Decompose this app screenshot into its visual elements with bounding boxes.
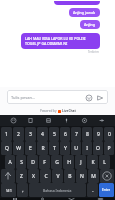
button[interactable]: 6 [60, 127, 70, 141]
button[interactable]: Home [38, 198, 47, 200]
button[interactable]: C [40, 169, 51, 183]
button[interactable]: 9 [93, 127, 103, 141]
button[interactable]: Y [60, 141, 70, 155]
staticText: T [53, 145, 56, 152]
staticText: Bahasa Indonesia [43, 188, 72, 193]
staticText: 6 [64, 131, 67, 138]
staticText: , [22, 187, 24, 194]
button[interactable]: LAH MAU BISA LAPOR LU KE POLISI TOGEL JP… [21, 33, 100, 49]
button[interactable]: !#1 [1, 183, 16, 197]
button[interactable]: M [88, 169, 99, 183]
button[interactable]: Theme [44, 116, 53, 125]
staticText: Q [5, 145, 9, 152]
staticText: N [80, 173, 84, 180]
button[interactable]: Q [1, 141, 12, 155]
button[interactable]: . [87, 183, 98, 197]
button[interactable]: Tulis pesan... [7, 90, 108, 104]
button[interactable]: 0 [104, 127, 114, 141]
button[interactable]: Recents [10, 198, 19, 200]
staticText: . [92, 187, 94, 194]
button[interactable]: K [87, 155, 98, 169]
staticText: V [56, 173, 60, 180]
button[interactable] [54, 1, 100, 5]
button[interactable]: V [52, 169, 63, 183]
button[interactable]: R [37, 141, 48, 155]
staticText: L [103, 159, 106, 166]
button[interactable]: 1 [1, 127, 12, 141]
button[interactable]: Settings [80, 116, 89, 125]
staticText: D [31, 159, 35, 166]
button[interactable]: , [17, 183, 28, 197]
button[interactable]: I [82, 141, 92, 155]
staticText: H [67, 159, 71, 166]
button[interactable]: U [71, 141, 81, 155]
staticText: C [44, 173, 48, 180]
button[interactable]: 8 [82, 127, 92, 141]
staticText: J [80, 159, 82, 166]
button[interactable]: More [97, 116, 106, 125]
staticText: !#1 [6, 188, 12, 193]
button[interactable]: Bahasa Indonesia [29, 183, 86, 197]
button[interactable]: J [75, 155, 86, 169]
button[interactable]: H [63, 155, 74, 169]
button[interactable]: Shift [1, 169, 15, 183]
staticText: S [20, 159, 23, 166]
button[interactable]: Anjing jawab [69, 8, 100, 17]
button[interactable]: Enter [99, 183, 114, 197]
button[interactable]: Back [67, 198, 76, 200]
button[interactable]: Sticker [9, 116, 18, 125]
staticText: X [32, 173, 35, 180]
staticText: K [91, 159, 95, 166]
staticText: 2 [17, 131, 20, 138]
button[interactable]: Switch keyboard [96, 198, 105, 200]
staticText: 9 [97, 131, 100, 138]
button[interactable]: S [16, 155, 26, 169]
staticText: I [86, 145, 88, 152]
button[interactable]: Send [95, 93, 104, 102]
staticText: 7 [75, 131, 78, 138]
button[interactable]: 4 [37, 127, 48, 141]
staticText: F [43, 159, 46, 166]
staticText: R [41, 145, 45, 152]
button[interactable]: D [27, 155, 38, 169]
staticText: E [29, 145, 32, 152]
staticText: Tulis pesan... [11, 95, 36, 100]
button[interactable]: 3 [25, 127, 36, 141]
staticText: 3 [29, 131, 32, 138]
button[interactable]: T [49, 141, 59, 155]
button[interactable]: F [39, 155, 50, 169]
button[interactable]: Clipboard [26, 116, 35, 125]
button[interactable]: N [76, 169, 87, 183]
staticText: M [91, 173, 96, 180]
staticText: LiveChat [62, 109, 76, 113]
button[interactable]: O [93, 141, 103, 155]
button[interactable]: 5 [49, 127, 59, 141]
button[interactable]: P [104, 141, 114, 155]
button[interactable]: Emoji [84, 93, 93, 102]
staticText: 1 [5, 131, 8, 138]
button[interactable]: A [5, 155, 15, 169]
button[interactable]: G [51, 155, 62, 169]
button[interactable]: W [13, 141, 24, 155]
button[interactable]: Anjing [80, 20, 100, 29]
button[interactable]: Voice input [62, 116, 71, 125]
staticText: O [96, 145, 100, 152]
button[interactable]: 7 [71, 127, 81, 141]
staticText: A [8, 159, 12, 166]
button[interactable]: B [64, 169, 75, 183]
button[interactable]: L [99, 155, 110, 169]
staticText: W [16, 145, 21, 152]
staticText: Enter [102, 188, 111, 192]
button[interactable]: Z [16, 169, 27, 183]
button[interactable]: Backspace [100, 169, 114, 183]
staticText: 5 [53, 131, 56, 138]
staticText: LAH MAU BISA LAPOR LU KE POLISI TOGEL JP… [25, 36, 96, 46]
button[interactable]: 2 [13, 127, 24, 141]
button[interactable]: X [28, 169, 39, 183]
staticText: U [74, 145, 78, 152]
staticText: G [55, 159, 59, 166]
staticText: Y [64, 145, 67, 152]
staticText: Terkirim [88, 50, 99, 54]
button[interactable]: E [25, 141, 36, 155]
staticText: Anjing [84, 22, 96, 27]
